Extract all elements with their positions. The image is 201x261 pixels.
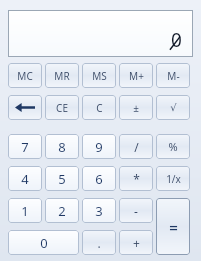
button[interactable]: 5: [45, 166, 79, 191]
button[interactable]: 8: [45, 134, 79, 159]
button[interactable]: C: [82, 95, 116, 120]
button[interactable]: 7: [8, 134, 42, 159]
staticText: 0: [171, 27, 182, 53]
staticText: 6: [95, 170, 103, 188]
staticText: M-: [167, 69, 180, 83]
staticText: CE: [56, 101, 68, 115]
staticText: 2: [58, 202, 66, 220]
button[interactable]: Backspace: [8, 95, 42, 120]
button[interactable]: MS: [82, 63, 116, 88]
button[interactable]: 2: [45, 198, 79, 223]
staticText: =: [169, 217, 178, 237]
staticText: 7: [21, 138, 29, 156]
staticText: 3: [95, 202, 103, 220]
button[interactable]: /: [119, 134, 153, 159]
button[interactable]: 6: [82, 166, 116, 191]
staticText: 1: [21, 202, 29, 220]
staticText: 8: [58, 138, 66, 156]
staticText: 5: [58, 170, 66, 188]
button[interactable]: 0: [8, 230, 79, 255]
staticText: 1/x: [166, 172, 181, 186]
staticText: -: [134, 203, 138, 219]
staticText: √: [170, 102, 177, 114]
staticText: MS: [92, 69, 107, 83]
button[interactable]: 3: [82, 198, 116, 223]
staticText: *: [133, 171, 140, 187]
button[interactable]: MC: [8, 63, 42, 88]
button[interactable]: M-: [156, 63, 190, 88]
button[interactable]: .: [82, 230, 116, 255]
staticText: M+: [129, 69, 144, 83]
staticText: MR: [54, 69, 70, 83]
button[interactable]: 1/x: [156, 166, 190, 191]
button[interactable]: =: [156, 198, 190, 255]
button[interactable]: 1: [8, 198, 42, 223]
button[interactable]: MR: [45, 63, 79, 88]
button[interactable]: M+: [119, 63, 153, 88]
staticText: ±: [133, 101, 139, 115]
staticText: +: [133, 235, 140, 251]
staticText: 4: [21, 170, 29, 188]
button[interactable]: -: [119, 198, 153, 223]
button[interactable]: 9: [82, 134, 116, 159]
staticText: MC: [17, 69, 33, 83]
staticText: .: [97, 235, 101, 251]
button[interactable]: +: [119, 230, 153, 255]
staticText: /: [134, 139, 139, 155]
staticText: %: [168, 139, 178, 154]
staticText: 0: [40, 234, 48, 252]
button[interactable]: 4: [8, 166, 42, 191]
staticText: C: [96, 101, 103, 115]
button[interactable]: CE: [45, 95, 79, 120]
button[interactable]: *: [119, 166, 153, 191]
button[interactable]: ±: [119, 95, 153, 120]
staticText: 9: [95, 138, 103, 156]
button[interactable]: √: [156, 95, 190, 120]
button[interactable]: %: [156, 134, 190, 159]
